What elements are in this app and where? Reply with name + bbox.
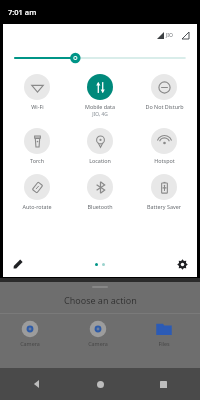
button[interactable]: Brightness [15, 46, 185, 70]
staticText: Battery Saver [147, 203, 181, 210]
button[interactable]: Wi-Fi [7, 74, 67, 110]
button[interactable]: Do Not Disturb [134, 74, 194, 110]
staticText: Camera [88, 340, 108, 347]
staticText: Bluetooth [87, 203, 113, 210]
button[interactable]: Back [26, 373, 48, 395]
button[interactable]: Camera [78, 320, 118, 347]
button[interactable]: Edit [9, 255, 27, 273]
staticText: Files [158, 340, 170, 347]
button[interactable]: Battery Saver [134, 174, 194, 210]
button[interactable]: Settings [173, 255, 191, 273]
staticText: Hotspot [154, 157, 175, 164]
staticText: Auto-rotate [22, 203, 52, 210]
button[interactable]: Auto-rotate [7, 174, 67, 210]
button[interactable]: Recents [152, 373, 174, 395]
staticText: Mobile data [85, 103, 115, 110]
staticText: Torch [30, 157, 44, 164]
button[interactable]: Hotspot [134, 128, 194, 164]
staticText: Wi-Fi [31, 103, 44, 110]
staticText: 7:01 am [8, 7, 37, 17]
staticText: Camera [20, 340, 40, 347]
button[interactable]: Mobile data [70, 74, 130, 118]
button[interactable]: Files [144, 320, 184, 347]
button[interactable]: Location [70, 128, 130, 164]
button[interactable]: Torch [7, 128, 67, 164]
button[interactable]: Bluetooth [70, 174, 130, 210]
staticText: JIO [166, 32, 173, 39]
staticText: Do Not Disturb [145, 103, 184, 110]
staticText: JIO, 4G [92, 111, 108, 118]
button[interactable]: Home [89, 373, 111, 395]
button[interactable]: Camera [10, 320, 50, 347]
staticText: Choose an action [64, 294, 137, 306]
staticText: Location [89, 157, 111, 164]
